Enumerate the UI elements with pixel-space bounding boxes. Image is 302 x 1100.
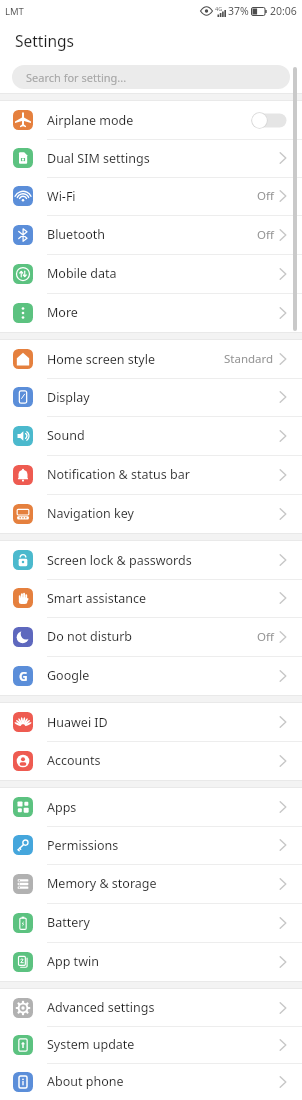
staticText: Notification & status bar [47,466,190,483]
staticText: Display [47,389,90,406]
button[interactable]: Navigation key [0,494,302,533]
staticText: Standard [224,351,274,367]
button[interactable]: Advanced settings [0,989,302,1026]
staticText: More [47,304,78,321]
staticText: Dual SIM settings [47,150,150,167]
staticText: Off [257,227,274,243]
button[interactable]: Battery [0,903,302,942]
staticText: System update [47,1036,135,1053]
staticText: Google [47,667,90,684]
staticText: 20:06 [270,4,297,18]
staticText: Battery [47,914,90,931]
button[interactable]: Accounts [0,741,302,780]
staticText: About phone [47,1073,124,1090]
button[interactable]: Dual SIM settings [0,139,302,177]
staticText: Wi-Fi [47,188,76,205]
button[interactable]: Wi-Fi [0,177,302,215]
staticText: Permissions [47,837,119,854]
button[interactable]: Search for setting... [12,65,290,89]
button[interactable]: Memory & storage [0,864,302,903]
button[interactable]: System update [0,1026,302,1063]
staticText: Settings [15,30,74,51]
button[interactable]: More [0,293,302,332]
staticText: App twin [47,953,99,970]
staticText: Smart assistance [47,590,146,607]
staticText: 4G [215,5,223,12]
button[interactable]: Airplane mode [0,101,302,139]
staticText: Off [257,188,274,204]
staticText: Memory & storage [47,875,157,892]
button[interactable]: About phone [0,1063,302,1100]
staticText: Bluetooth [47,226,106,243]
staticText: Search for setting... [26,70,127,85]
staticText: Accounts [47,752,101,769]
button[interactable]: Home screen style [0,340,302,378]
staticText: Huawei ID [47,714,108,731]
staticText: Sound [47,427,85,444]
staticText: 37% [228,4,249,18]
button[interactable]: Sound [0,416,302,455]
staticText: Screen lock & passwords [47,552,192,569]
button[interactable]: Notification & status bar [0,455,302,494]
staticText: G [19,668,28,684]
staticText: Home screen style [47,351,155,368]
staticText: LMT [5,5,24,18]
button[interactable]: Huawei ID [0,703,302,741]
button[interactable]: Display [0,378,302,416]
button[interactable]: Mobile data [0,254,302,293]
button[interactable]: Do not disturb [0,617,302,656]
staticText: Off [257,629,274,645]
button[interactable]: Smart assistance [0,579,302,617]
staticText: Navigation key [47,505,134,522]
staticText: Do not disturb [47,628,132,645]
staticText: Mobile data [47,265,117,282]
button[interactable]: Bluetooth [0,215,302,254]
button[interactable]: Apps [0,788,302,826]
button[interactable]: G [0,656,302,695]
staticText: Advanced settings [47,999,155,1016]
staticText: Apps [47,799,77,816]
staticText: Airplane mode [47,112,134,129]
button[interactable]: App twin [0,942,302,981]
button[interactable]: Permissions [0,826,302,864]
button[interactable]: Screen lock & passwords [0,541,302,579]
